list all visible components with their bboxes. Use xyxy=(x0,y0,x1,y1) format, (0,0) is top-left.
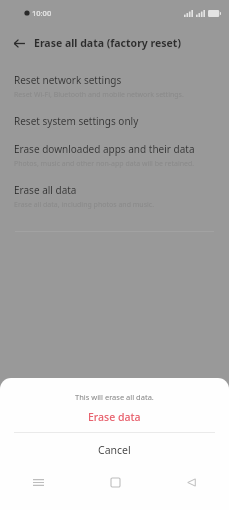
staticText: Reset network settings xyxy=(14,73,122,87)
staticText: Erase all data, including photos and mus… xyxy=(14,200,155,210)
staticText: Erase all data xyxy=(14,183,77,197)
button[interactable]: Erase data xyxy=(0,402,229,432)
button[interactable]: Recent apps xyxy=(0,467,77,497)
staticText: Erase downloaded apps and their data xyxy=(14,142,195,156)
staticText: 10:00 xyxy=(32,8,52,18)
button[interactable]: Reset system settings only xyxy=(0,107,229,135)
staticText: Reset system settings only xyxy=(14,114,139,128)
button[interactable]: Erase downloaded apps and their data xyxy=(0,135,229,176)
staticText: Cancel xyxy=(98,443,131,457)
button[interactable]: Cancel xyxy=(0,433,229,467)
button[interactable]: Reset network settings xyxy=(0,66,229,107)
staticText: Erase data xyxy=(88,410,141,424)
button[interactable]: Erase all data xyxy=(0,176,229,217)
staticText: This will erase all data. xyxy=(75,392,154,402)
staticText: Photos, music and other non-app data wil… xyxy=(14,159,195,169)
button[interactable]: Back xyxy=(153,467,229,497)
staticText: Reset Wi-Fi, Bluetooth and mobile networ… xyxy=(14,90,184,100)
staticText: Erase all data (factory reset) xyxy=(34,36,181,50)
button[interactable]: Back xyxy=(8,32,30,54)
button[interactable]: Home xyxy=(77,467,153,497)
